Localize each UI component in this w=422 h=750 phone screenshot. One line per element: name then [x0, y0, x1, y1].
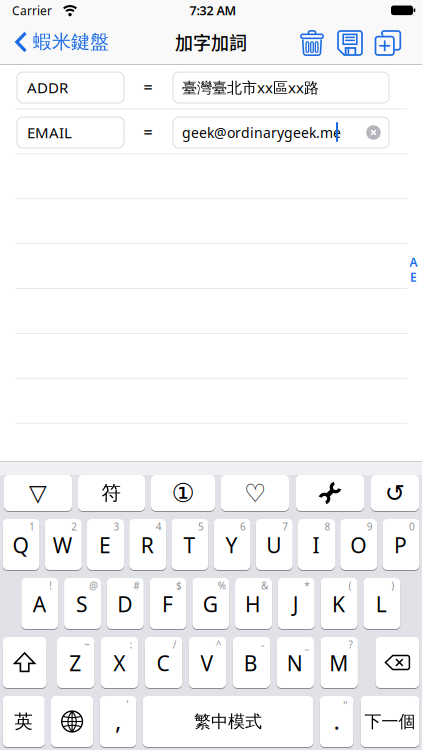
button[interactable]: ①: [151, 474, 215, 511]
staticText: A: [409, 254, 417, 270]
staticText: $: [176, 579, 182, 592]
button[interactable]: I: [298, 518, 335, 570]
staticText: L: [376, 590, 387, 618]
button[interactable]: D: [107, 577, 144, 629]
staticText: X: [113, 649, 125, 677]
button[interactable]: 符: [78, 474, 145, 511]
button[interactable]: O: [340, 518, 377, 570]
button[interactable]: W: [45, 518, 82, 570]
staticText: _: [304, 638, 308, 651]
button[interactable]: [375, 636, 419, 688]
button[interactable]: 蝦米鍵盤: [15, 30, 109, 54]
button[interactable]: U: [256, 518, 293, 570]
button[interactable]: C: [145, 636, 182, 688]
button[interactable]: K: [321, 577, 358, 629]
staticText: /: [173, 638, 177, 651]
staticText: 4: [156, 520, 162, 533]
button[interactable]: ♡: [221, 474, 289, 511]
staticText: 3: [113, 520, 119, 533]
button[interactable]: ,: [100, 695, 136, 747]
staticText: S: [76, 590, 88, 618]
staticText: ': [126, 696, 128, 711]
button[interactable]: 繁中模式: [143, 695, 313, 747]
staticText: 1: [29, 520, 35, 533]
staticText: V: [200, 649, 213, 677]
staticText: 5: [198, 520, 204, 533]
staticText: T: [183, 531, 195, 559]
staticText: @: [89, 579, 98, 592]
staticText: *: [304, 579, 310, 592]
button[interactable]: [3, 636, 47, 688]
button[interactable]: S: [64, 577, 101, 629]
staticText: ~: [84, 638, 90, 651]
staticText: ♡: [244, 478, 266, 507]
button[interactable]: F: [150, 577, 187, 629]
staticText: 7: [282, 520, 288, 533]
button[interactable]: N: [276, 636, 314, 688]
staticText: O: [350, 531, 366, 559]
staticText: I: [312, 531, 319, 559]
button[interactable]: B: [233, 636, 270, 688]
button[interactable]: [51, 695, 93, 747]
staticText: &: [261, 579, 268, 592]
staticText: 7:32 AM: [189, 2, 236, 19]
staticText: 蝦米鍵盤: [33, 30, 109, 54]
button[interactable]: R: [129, 518, 166, 570]
staticText: geek@ordinarygeek.me: [182, 123, 341, 142]
staticText: #: [133, 579, 139, 592]
staticText: 6: [240, 520, 246, 533]
staticText: =: [143, 76, 152, 98]
button[interactable]: V: [189, 636, 226, 688]
button[interactable]: 下一個: [361, 695, 419, 747]
staticText: 2: [71, 520, 77, 533]
staticText: ): [391, 579, 394, 592]
staticText: 英: [14, 710, 33, 733]
button[interactable]: E: [87, 518, 124, 570]
staticText: Z: [69, 649, 81, 677]
button[interactable]: Delete: [295, 26, 329, 60]
staticText: ": [343, 697, 347, 712]
button[interactable]: 英: [3, 695, 45, 747]
staticText: C: [157, 649, 170, 677]
staticText: A: [33, 590, 46, 618]
staticText: 臺灣臺北市xx區xx路: [182, 77, 319, 98]
button[interactable]: X: [101, 636, 138, 688]
button[interactable]: Clear text: [366, 125, 381, 140]
button[interactable]: G: [192, 577, 229, 629]
button[interactable]: Q: [3, 518, 40, 570]
staticText: H: [245, 590, 261, 618]
button[interactable]: ▽: [4, 474, 72, 511]
staticText: ^: [216, 638, 222, 651]
button[interactable]: .: [320, 695, 353, 747]
button[interactable]: M: [320, 636, 358, 688]
button[interactable]: Add: [371, 26, 405, 60]
staticText: J: [293, 590, 299, 618]
staticText: B: [244, 649, 258, 677]
button[interactable]: L: [363, 577, 400, 629]
button[interactable]: T: [171, 518, 208, 570]
staticText: D: [117, 590, 132, 618]
staticText: Y: [226, 531, 238, 559]
staticText: ↺: [385, 479, 405, 507]
button[interactable]: Z: [57, 636, 94, 688]
staticText: F: [162, 590, 173, 618]
button[interactable]: ↺: [371, 474, 419, 511]
button[interactable]: Save: [333, 26, 367, 60]
staticText: W: [53, 531, 73, 559]
button[interactable]: Y: [214, 518, 251, 570]
staticText: G: [203, 590, 218, 618]
button[interactable]: H: [235, 577, 272, 629]
staticText: ▽: [29, 480, 47, 506]
staticText: N: [287, 649, 303, 677]
button[interactable]: [296, 474, 364, 511]
staticText: 8: [324, 520, 330, 533]
staticText: E: [99, 531, 111, 559]
staticText: U: [266, 531, 281, 559]
staticText: Carrier: [12, 2, 52, 19]
staticText: 0: [409, 520, 415, 533]
staticText: ADDR: [27, 77, 68, 98]
button[interactable]: A: [21, 577, 58, 629]
staticText: E: [410, 269, 417, 285]
button[interactable]: P: [382, 518, 419, 570]
button[interactable]: J: [278, 577, 315, 629]
